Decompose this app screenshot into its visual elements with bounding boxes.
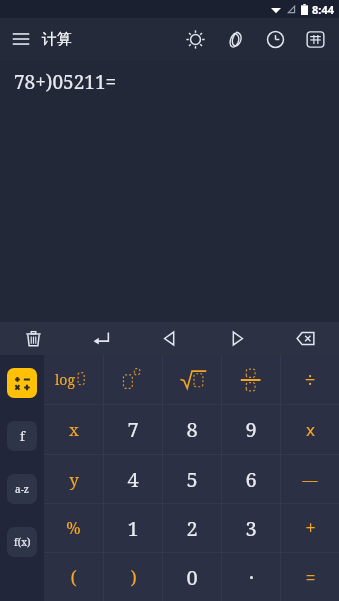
staticText: 7 — [127, 416, 139, 443]
button[interactable]: Arithmetic keypad — [7, 368, 37, 398]
button[interactable]: — — [281, 455, 339, 503]
button[interactable]: x — [281, 405, 339, 454]
button[interactable]: ) — [104, 553, 162, 601]
button[interactable]: 8 — [163, 405, 221, 454]
button[interactable]: ( — [44, 553, 103, 601]
button[interactable]: Clear — [0, 322, 67, 355]
staticText: log — [55, 370, 75, 389]
staticText: ) — [130, 565, 137, 590]
staticText: 1 — [127, 515, 139, 542]
staticText: 78+)05211= — [14, 69, 117, 95]
button[interactable]: Power — [104, 355, 162, 404]
staticText: · — [249, 564, 254, 591]
button[interactable]: Custom functions — [7, 527, 37, 557]
staticText: f(x) — [14, 535, 31, 549]
staticText: 9 — [245, 416, 257, 443]
button[interactable]: ÷ — [281, 355, 339, 404]
button[interactable]: % — [44, 504, 103, 552]
staticText: + — [305, 515, 316, 541]
staticText: 计算 — [42, 30, 72, 49]
button[interactable]: Theme — [215, 19, 255, 59]
button[interactable]: Fraction — [222, 355, 280, 404]
staticText: 0 — [186, 564, 198, 591]
button[interactable]: History — [255, 19, 295, 59]
staticText: = — [305, 565, 316, 590]
button[interactable]: 9 — [222, 405, 280, 454]
staticText: x — [69, 418, 79, 441]
button[interactable]: Variables — [7, 474, 37, 504]
button[interactable]: 3 — [222, 504, 280, 552]
button[interactable]: Number mode — [295, 19, 335, 59]
button[interactable]: 4 — [104, 455, 162, 503]
button[interactable]: 1 — [104, 504, 162, 552]
button[interactable]: 2 — [163, 504, 221, 552]
staticText: y — [69, 468, 79, 491]
staticText: 5 — [186, 466, 198, 493]
staticText: ( — [70, 565, 77, 590]
staticText: x — [306, 418, 315, 441]
button[interactable]: Square root — [163, 355, 221, 404]
button[interactable]: · — [222, 553, 280, 601]
staticText: 4 — [127, 466, 139, 493]
button[interactable]: 5 — [163, 455, 221, 503]
staticText: a-z — [15, 482, 29, 496]
button[interactable]: x — [44, 405, 103, 454]
button[interactable]: 6 — [222, 455, 280, 503]
button[interactable]: Logarithm — [44, 355, 103, 404]
button[interactable]: Left — [135, 322, 203, 355]
staticText: 8:44 — [312, 2, 334, 17]
button[interactable]: 0 — [163, 553, 221, 601]
staticText: % — [66, 517, 81, 539]
staticText: ÷ — [304, 366, 316, 393]
button[interactable]: Menu — [0, 18, 42, 60]
button[interactable]: y — [44, 455, 103, 503]
staticText: f — [20, 427, 25, 445]
staticText: 8 — [186, 416, 198, 443]
button[interactable]: Functions — [7, 421, 37, 451]
staticText: 6 — [245, 466, 257, 493]
staticText: 2 — [186, 515, 198, 542]
button[interactable]: Right — [203, 322, 271, 355]
button[interactable]: 7 — [104, 405, 162, 454]
staticText: 3 — [245, 515, 257, 542]
button[interactable]: Brightness — [175, 19, 215, 59]
staticText: — — [302, 469, 318, 489]
button[interactable]: Backspace — [271, 322, 339, 355]
button[interactable]: = — [281, 553, 339, 601]
button[interactable]: Enter — [67, 322, 135, 355]
button[interactable]: + — [281, 504, 339, 552]
